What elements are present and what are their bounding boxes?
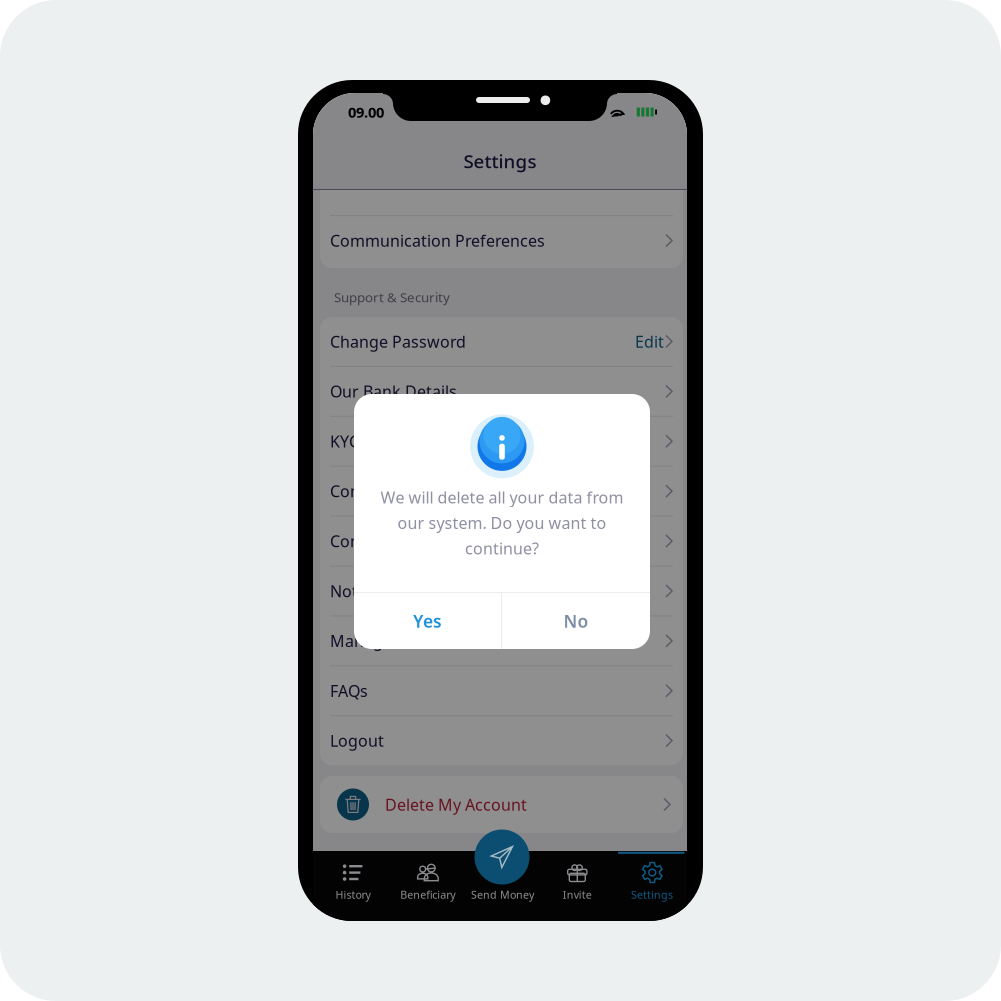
staticText: 09.00 bbox=[348, 102, 384, 122]
staticText: KYC Documents bbox=[330, 431, 451, 452]
button[interactable]: Communication Preferences bbox=[320, 216, 683, 265]
button[interactable]: Beneficiary bbox=[390, 860, 465, 904]
staticText: Our Bank Details bbox=[330, 381, 457, 402]
button[interactable]: Settings bbox=[615, 860, 689, 904]
button[interactable]: History bbox=[315, 860, 390, 904]
staticText: Contact Us bbox=[330, 480, 413, 502]
staticText: We will delete all your data from bbox=[380, 487, 623, 508]
button[interactable]: Manage Devices bbox=[320, 616, 683, 665]
staticText: Notifications bbox=[330, 580, 427, 601]
staticText: Yes bbox=[413, 609, 442, 632]
button[interactable]: FAQs bbox=[320, 666, 683, 715]
staticText: FAQs bbox=[330, 680, 368, 701]
button[interactable]: Change Password bbox=[320, 317, 683, 366]
button[interactable]: Contact Us bbox=[320, 467, 683, 516]
staticText: Change Password bbox=[330, 331, 466, 352]
staticText: Communication Preferences bbox=[330, 230, 545, 251]
staticText: Support & Security bbox=[334, 288, 450, 306]
button[interactable]: Send Money bbox=[465, 860, 540, 904]
button[interactable]: Yes bbox=[354, 593, 501, 649]
button[interactable]: Send Money bbox=[474, 829, 529, 884]
button[interactable]: Delete My Account bbox=[320, 776, 683, 833]
button[interactable]: Notifications bbox=[320, 566, 683, 615]
button[interactable]: No bbox=[502, 593, 650, 649]
staticText: our system. Do you want to bbox=[397, 512, 606, 533]
staticText: Beneficiary bbox=[400, 887, 455, 902]
staticText: History bbox=[335, 887, 370, 902]
staticText: Manage Devices bbox=[330, 630, 454, 651]
staticText: No bbox=[563, 609, 588, 632]
staticText: Logout bbox=[330, 730, 384, 751]
staticText: Delete My Account bbox=[385, 794, 527, 815]
staticText: Settings bbox=[463, 149, 536, 173]
staticText: continue? bbox=[465, 538, 539, 559]
staticText: Invite bbox=[563, 887, 592, 902]
button[interactable]: KYC Documents bbox=[320, 417, 683, 466]
staticText: Settings bbox=[631, 887, 673, 902]
staticText: Edit bbox=[635, 331, 664, 352]
button[interactable]: Our Bank Details bbox=[320, 367, 683, 416]
button[interactable]: Invite bbox=[540, 860, 615, 904]
staticText: Complaints bbox=[330, 530, 416, 552]
button[interactable]: Logout bbox=[320, 716, 683, 765]
staticText: Send Money bbox=[471, 887, 534, 902]
button[interactable]: Complaints bbox=[320, 517, 683, 565]
